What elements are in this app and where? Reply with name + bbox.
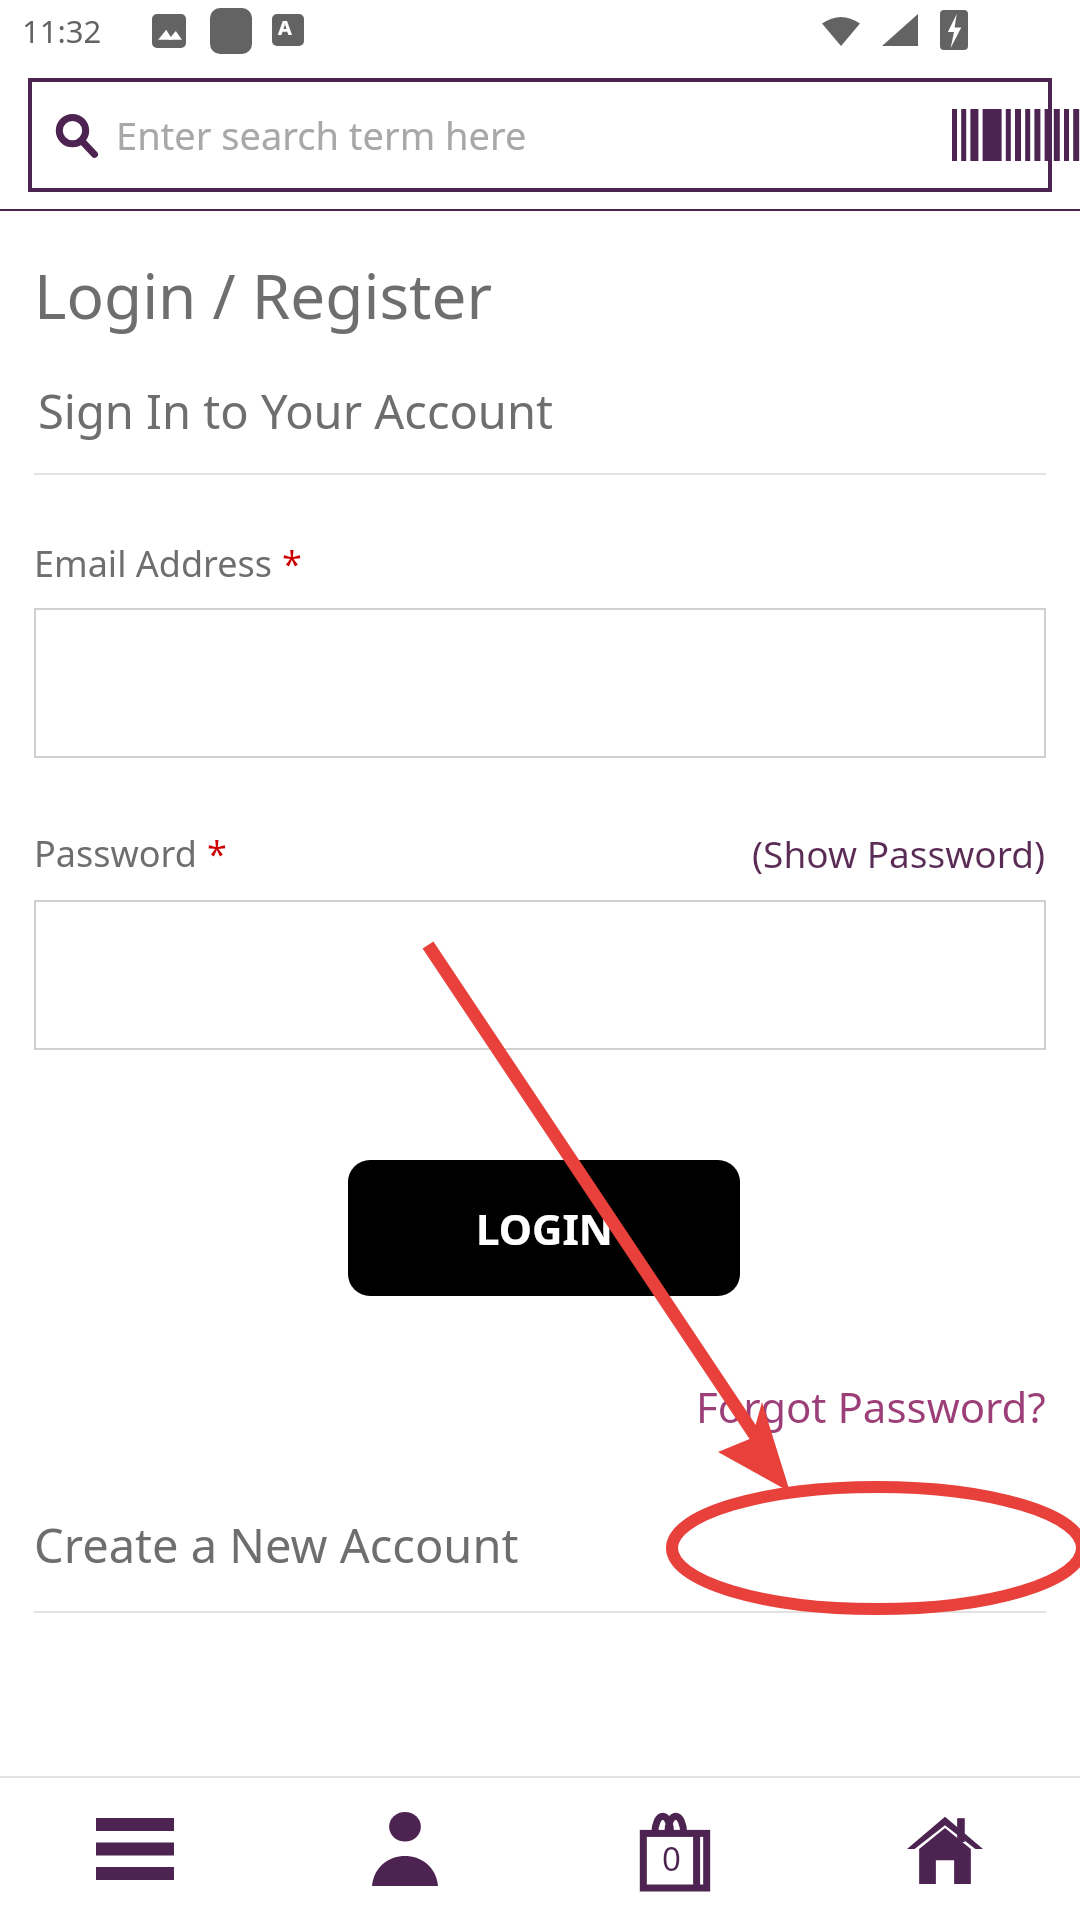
button[interactable]: Scan barcode — [950, 106, 1026, 164]
staticText: Login / Register — [34, 253, 493, 337]
button[interactable]: LOGIN — [348, 1160, 740, 1296]
staticText: Forgot Password? — [696, 1378, 1046, 1435]
staticText: 0 — [662, 1836, 681, 1881]
staticText: A — [278, 14, 292, 41]
button[interactable]: (Show Password) — [752, 828, 1046, 878]
button[interactable]: Forgot Password? — [696, 1378, 1046, 1435]
staticText: 11:32 — [22, 10, 102, 52]
staticText: LOGIN — [476, 1200, 613, 1257]
staticText: Create a New Account — [34, 1513, 519, 1577]
button[interactable]: Enter search term here — [28, 78, 1052, 192]
staticText: (Show Password) — [752, 828, 1046, 878]
button[interactable] — [34, 900, 1046, 1050]
button[interactable]: Home — [810, 1778, 1080, 1920]
staticText: Email Address — [34, 539, 282, 588]
staticText: Password — [34, 829, 207, 878]
staticText: Enter search term here — [116, 109, 527, 161]
button[interactable] — [34, 608, 1046, 758]
staticText: Sign In to Your Account — [38, 379, 553, 443]
button[interactable]: Account — [270, 1778, 540, 1920]
button[interactable]: Menu — [0, 1778, 270, 1920]
button[interactable]: Shopping bag, 0 items — [540, 1778, 810, 1920]
staticText: * — [207, 829, 227, 878]
staticText: * — [282, 539, 302, 588]
